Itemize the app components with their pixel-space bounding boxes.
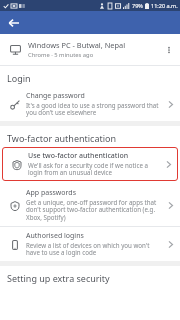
button[interactable]: Windows PC - Butwal, Nepal (0, 34, 180, 65)
button[interactable]: Back (4, 13, 23, 32)
staticText: Setting up extra security (7, 272, 110, 284)
button[interactable]: More options (161, 42, 177, 58)
staticText: Two-factor authentication (7, 132, 117, 144)
staticText: Login (7, 72, 31, 84)
staticText: Get a unique, one-off password for apps … (26, 198, 162, 222)
staticText: Use two-factor authentication (28, 151, 129, 161)
staticText: Change password (26, 91, 85, 101)
button[interactable]: Authorised logins (0, 227, 180, 261)
staticText: 79% (132, 2, 143, 9)
staticText: Windows PC - Butwal, Nepal (28, 40, 126, 50)
button[interactable]: Use two-factor authentication (2, 147, 178, 181)
staticText: Review a list of devices on which you wo… (26, 241, 162, 257)
staticText: Authorised logins (26, 231, 84, 241)
staticText: App passwords (26, 188, 76, 198)
staticText: Chrome · 5 minutes ago (28, 51, 94, 59)
staticText: We'll ask for a security code if we noti… (28, 161, 160, 177)
button[interactable]: Change password (0, 87, 180, 121)
button[interactable]: App passwords (0, 184, 180, 226)
staticText: 11:20 a.m. (151, 2, 178, 9)
staticText: It's a good idea to use a strong passwor… (26, 101, 162, 117)
